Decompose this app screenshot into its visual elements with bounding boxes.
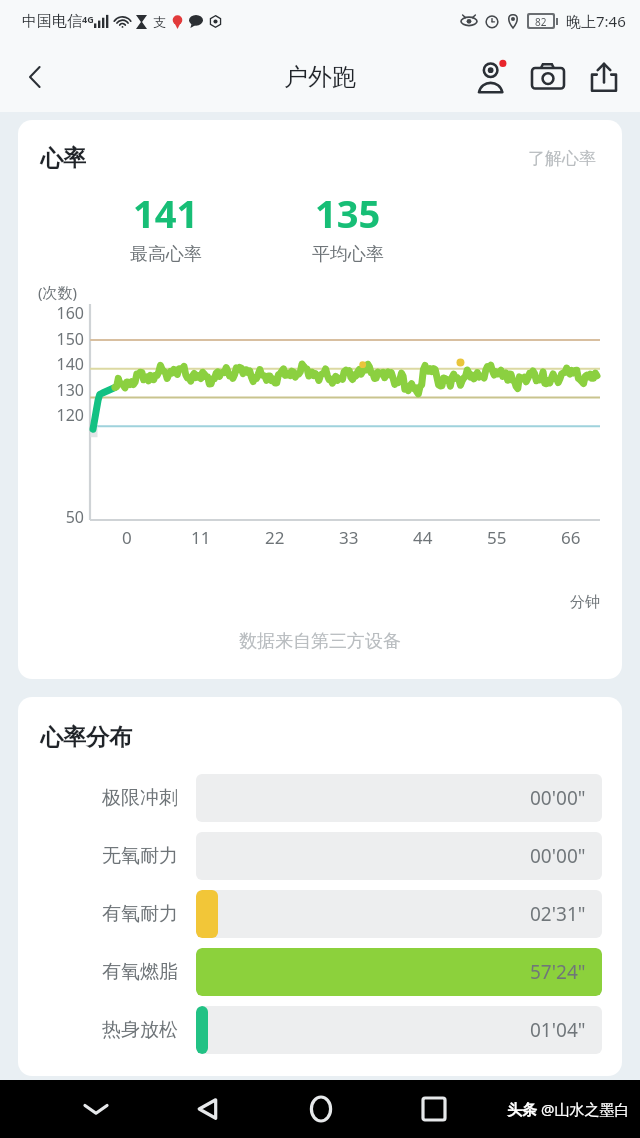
button[interactable]: Back: [152, 1080, 264, 1138]
staticText: 22: [265, 526, 285, 549]
staticText: 82: [535, 15, 547, 27]
staticText: 了解心率: [528, 148, 596, 169]
staticText: 140: [32, 353, 84, 375]
button[interactable]: Route map: [464, 49, 520, 105]
staticText: 02'31": [530, 901, 586, 927]
button[interactable]: 无氧耐力: [18, 828, 622, 884]
button[interactable]: Camera: [520, 49, 576, 105]
button[interactable]: Share: [576, 49, 632, 105]
button[interactable]: Home: [264, 1080, 377, 1138]
staticText: 中国电信: [22, 12, 82, 31]
staticText: 33: [339, 526, 359, 549]
staticText: 心率: [40, 144, 86, 173]
staticText: 分钟: [570, 593, 600, 612]
staticText: 57'24": [530, 959, 586, 985]
staticText: 最高心率: [130, 243, 202, 266]
button[interactable]: Recents: [377, 1080, 490, 1138]
staticText: 头条: [507, 1099, 541, 1119]
staticText: 00'00": [530, 785, 586, 811]
staticText: 135: [315, 187, 381, 239]
button[interactable]: 热身放松: [18, 1002, 622, 1058]
staticText: 160: [32, 302, 84, 324]
staticText: 户外跑: [284, 62, 356, 92]
staticText: 120: [32, 404, 84, 426]
button[interactable]: 有氧燃脂: [18, 944, 622, 1000]
button[interactable]: Hide: [40, 1080, 152, 1138]
staticText: 44: [413, 526, 433, 549]
staticText: 55: [487, 526, 507, 549]
staticText: 平均心率: [312, 243, 384, 266]
staticText: 66: [561, 526, 581, 549]
staticText: 11: [191, 526, 211, 549]
staticText: 01'04": [530, 1017, 586, 1043]
staticText: (次数): [38, 282, 78, 302]
staticText: 4G: [82, 13, 94, 25]
staticText: 心率分布: [40, 723, 132, 752]
button[interactable]: Back: [10, 51, 62, 103]
staticText: 支: [153, 14, 166, 30]
staticText: 150: [32, 328, 84, 350]
staticText: 141: [133, 187, 199, 239]
button[interactable]: 有氧耐力: [18, 886, 622, 942]
button[interactable]: 极限冲刺: [18, 770, 622, 826]
staticText: 0: [122, 526, 132, 549]
staticText: 00'00": [530, 843, 586, 869]
staticText: 有氧燃脂: [102, 960, 178, 984]
staticText: @山水之墨白: [541, 1099, 630, 1119]
staticText: 热身放松: [102, 1018, 178, 1042]
staticText: 130: [32, 379, 84, 401]
button[interactable]: 了解心率: [524, 144, 600, 173]
staticText: 无氧耐力: [102, 844, 178, 868]
staticText: 极限冲刺: [102, 786, 178, 810]
staticText: 有氧耐力: [102, 902, 178, 926]
staticText: 数据来自第三方设备: [239, 630, 401, 653]
staticText: 晚上7:46: [566, 11, 626, 31]
staticText: 50: [32, 506, 84, 528]
